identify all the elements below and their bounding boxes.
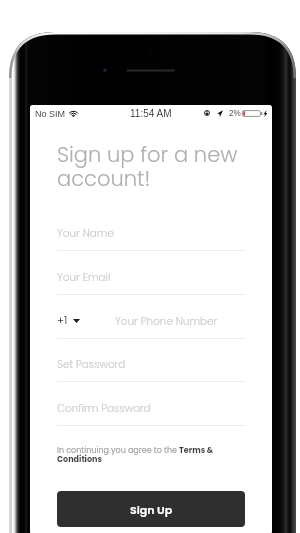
staticText: 11:54 AM	[130, 108, 172, 119]
button[interactable]: Confirm Password	[30, 382, 272, 426]
other: Wi-Fi	[69, 111, 78, 117]
button[interactable]: Your Email	[30, 251, 272, 295]
staticText: Your Email	[57, 270, 111, 285]
staticText: Confirm Password	[57, 401, 151, 416]
staticText: 2%	[229, 109, 241, 118]
other: Battery 2% charging	[242, 110, 268, 117]
staticText: Your Name	[57, 226, 114, 241]
other: Rotation lock	[204, 110, 210, 116]
staticText: +1	[57, 313, 68, 328]
button[interactable]: Your Name	[30, 207, 272, 251]
staticText: Your Phone Number	[115, 314, 218, 329]
button[interactable]: Sign Up	[57, 491, 245, 527]
staticText: Set Password	[57, 357, 126, 372]
staticText: Sign up for a new account!	[57, 144, 264, 192]
staticText: No SIM	[35, 109, 66, 119]
button[interactable]: In continuing you agree to the Terms & C…	[57, 446, 246, 464]
button[interactable]: +1	[30, 295, 272, 339]
button[interactable]: Set Password	[30, 338, 272, 382]
other: Location	[217, 110, 223, 117]
staticText: Sign Up	[130, 502, 173, 517]
